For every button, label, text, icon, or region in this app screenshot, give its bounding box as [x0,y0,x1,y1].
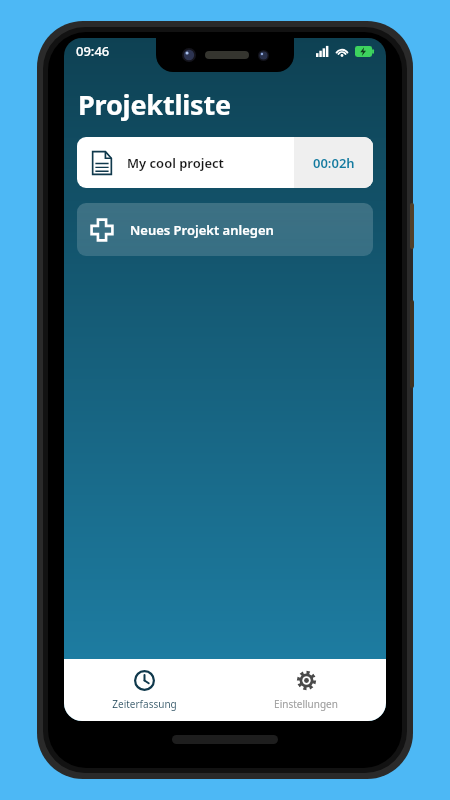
button[interactable]: Zeiterfassung [64,659,225,721]
button[interactable]: Neues Projekt anlegen [77,203,373,256]
staticText: Projektliste [78,86,231,123]
staticText: Zeiterfassung [112,697,177,711]
button[interactable]: My cool project [77,137,373,188]
other: Einstellungen [296,670,317,691]
staticText: 09:46 [76,42,110,60]
staticText: Einstellungen [274,697,338,711]
staticText: My cool project [127,154,224,172]
button[interactable]: Einstellungen [225,659,386,721]
staticText: Neues Projekt anlegen [130,221,274,239]
staticText: 00:02h [313,154,355,172]
